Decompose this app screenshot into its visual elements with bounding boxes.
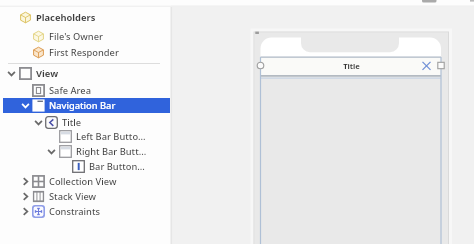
button[interactable] bbox=[0, 29, 171, 44]
button[interactable] bbox=[0, 83, 171, 98]
staticText: Left Bar Butto... bbox=[76, 130, 146, 143]
button[interactable] bbox=[0, 66, 171, 81]
staticText: View bbox=[36, 67, 59, 80]
button[interactable] bbox=[0, 144, 171, 159]
button[interactable] bbox=[0, 159, 171, 174]
button[interactable] bbox=[0, 129, 171, 144]
staticText: Bar Button... bbox=[89, 160, 145, 173]
button[interactable] bbox=[0, 45, 171, 60]
staticText: Constraints bbox=[49, 205, 100, 218]
button[interactable] bbox=[0, 115, 171, 130]
staticText: Safe Area bbox=[49, 84, 91, 97]
button[interactable] bbox=[0, 10, 171, 25]
button[interactable] bbox=[0, 98, 171, 113]
staticText: Collection View bbox=[49, 175, 117, 188]
button[interactable] bbox=[0, 189, 171, 204]
staticText: Stack View bbox=[49, 190, 97, 203]
button[interactable]: Title bbox=[326, 59, 376, 72]
staticText: First Responder bbox=[49, 46, 119, 59]
staticText: Navigation Bar bbox=[49, 99, 116, 112]
staticText: Title bbox=[62, 116, 82, 129]
staticText: Placeholders bbox=[36, 11, 96, 24]
button[interactable] bbox=[0, 174, 171, 189]
staticText: File's Owner bbox=[49, 30, 103, 43]
staticText: Title bbox=[343, 61, 360, 71]
button[interactable] bbox=[0, 204, 171, 219]
staticText: Right Bar Butt... bbox=[76, 145, 147, 158]
button[interactable]: Close bbox=[419, 59, 434, 74]
